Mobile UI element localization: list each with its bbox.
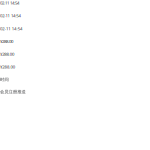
staticText: 02-11 14:54 <box>0 13 20 19</box>
staticText: 02-11 14:54 <box>0 0 19 6</box>
staticText: 会员注册推送 <box>0 89 25 95</box>
staticText: ¥288.00 <box>0 38 13 44</box>
staticText: 时间 <box>0 77 9 82</box>
staticText: ¥288.00 <box>0 51 14 57</box>
staticText: ¥288.00 <box>0 64 15 70</box>
staticText: 02-11 14:54 <box>0 26 22 31</box>
